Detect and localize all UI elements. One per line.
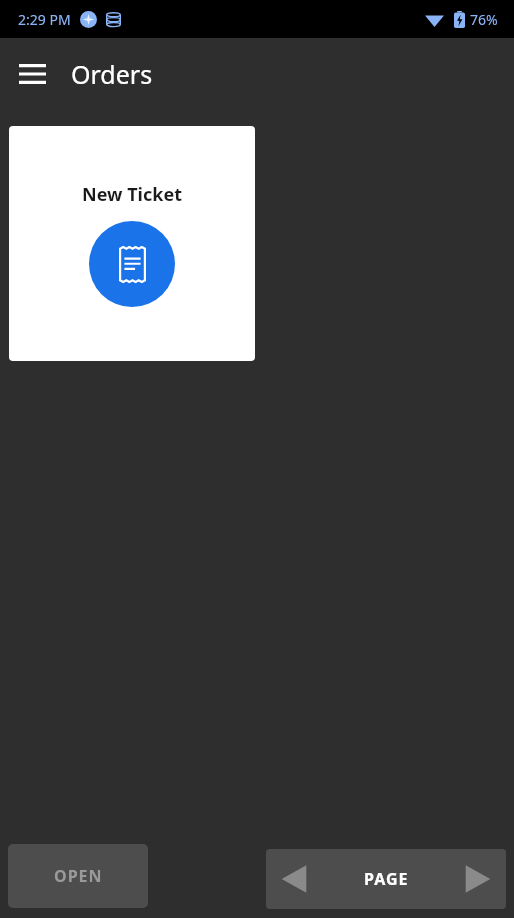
button[interactable]: OPEN — [8, 844, 148, 908]
staticText: 2:29 PM — [18, 10, 71, 29]
button[interactable]: Next page — [450, 849, 506, 909]
button[interactable]: PAGE — [322, 849, 450, 909]
staticText: New Ticket — [82, 182, 182, 207]
button[interactable]: New Ticket — [9, 126, 255, 361]
staticText: OPEN — [54, 865, 103, 887]
staticText: Orders — [71, 57, 153, 91]
button[interactable]: Previous page — [266, 849, 322, 909]
staticText: PAGE — [364, 868, 409, 890]
button[interactable]: Open navigation menu — [8, 50, 56, 98]
staticText: 76% — [470, 10, 498, 29]
